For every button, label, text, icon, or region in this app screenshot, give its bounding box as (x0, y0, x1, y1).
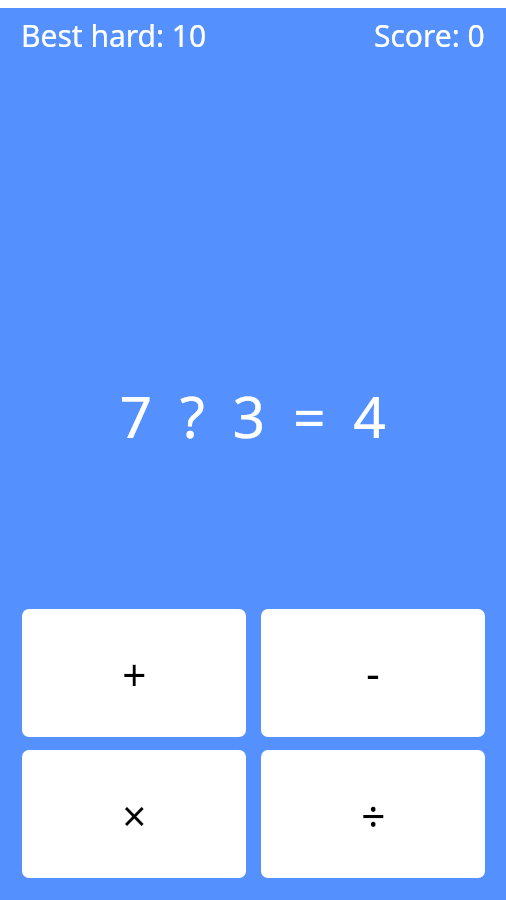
staticText: + (122, 645, 147, 704)
staticText: ÷ (361, 786, 386, 845)
staticText: Score: 0 (374, 15, 485, 56)
staticText: × (122, 786, 147, 845)
staticText: 7 ? 3 = 4 (3, 377, 506, 455)
staticText: Best hard: 10 (21, 15, 207, 56)
button[interactable]: × (22, 750, 246, 878)
button[interactable]: ÷ (261, 750, 485, 878)
button[interactable]: - (261, 609, 485, 737)
staticText: - (366, 643, 380, 702)
button[interactable]: + (22, 609, 246, 737)
